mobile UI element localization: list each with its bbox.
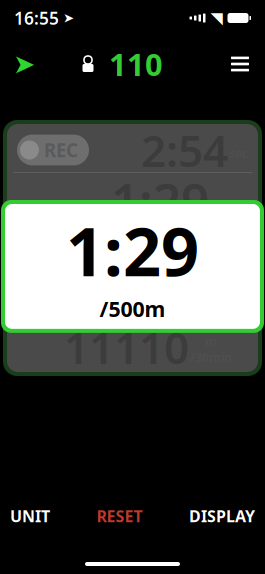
staticText: stroke length xyxy=(93,297,172,313)
staticText: ➤ xyxy=(13,49,35,79)
staticText: 1:29 xyxy=(111,167,209,233)
staticText: /500m xyxy=(210,197,248,213)
staticText: 16:55 xyxy=(14,6,59,29)
button[interactable]: REC xyxy=(17,135,89,165)
staticText: DISPLAY xyxy=(189,505,255,527)
staticText: 2:54 xyxy=(141,121,228,179)
staticText: 110 xyxy=(109,44,163,84)
staticText: ◥ xyxy=(210,9,222,27)
staticText: /500m xyxy=(99,294,165,323)
button[interactable]: UNIT xyxy=(2,495,58,537)
staticText: ➤ xyxy=(63,10,74,25)
staticText: 9.1 xyxy=(180,279,235,331)
staticText: 1:29 xyxy=(66,206,199,294)
button[interactable]: RESET xyxy=(88,495,150,537)
staticText: 11110 xyxy=(64,318,189,376)
staticText: REC xyxy=(44,138,78,162)
staticText: 1:27 xyxy=(115,225,209,287)
staticText: UNIT xyxy=(10,505,50,527)
button[interactable]: DISPLAY xyxy=(181,495,263,537)
button[interactable]: GPS xyxy=(5,43,43,85)
button[interactable]: Lock xyxy=(73,43,103,85)
button[interactable]: Menu xyxy=(220,43,260,85)
staticText: RESET xyxy=(96,505,142,527)
